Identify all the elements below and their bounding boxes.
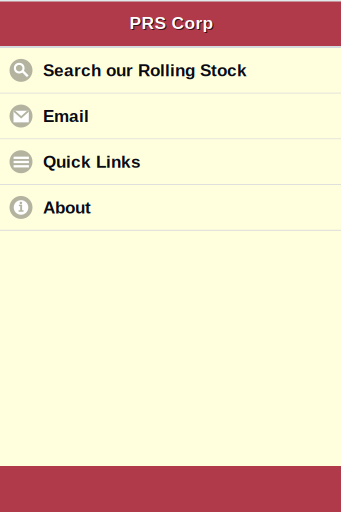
staticText: About [43,198,91,217]
button[interactable]: Quick Links [0,139,341,185]
staticText: PRS Corp [130,14,214,34]
staticText: Quick Links [43,152,141,171]
staticText: PRS Corp [129,13,213,33]
staticText: Email [43,106,89,126]
button[interactable]: Search our Rolling Stock [0,48,341,94]
staticText: Search our Rolling Stock [43,61,247,80]
button[interactable]: Email [0,94,341,139]
button[interactable]: About [0,185,341,231]
